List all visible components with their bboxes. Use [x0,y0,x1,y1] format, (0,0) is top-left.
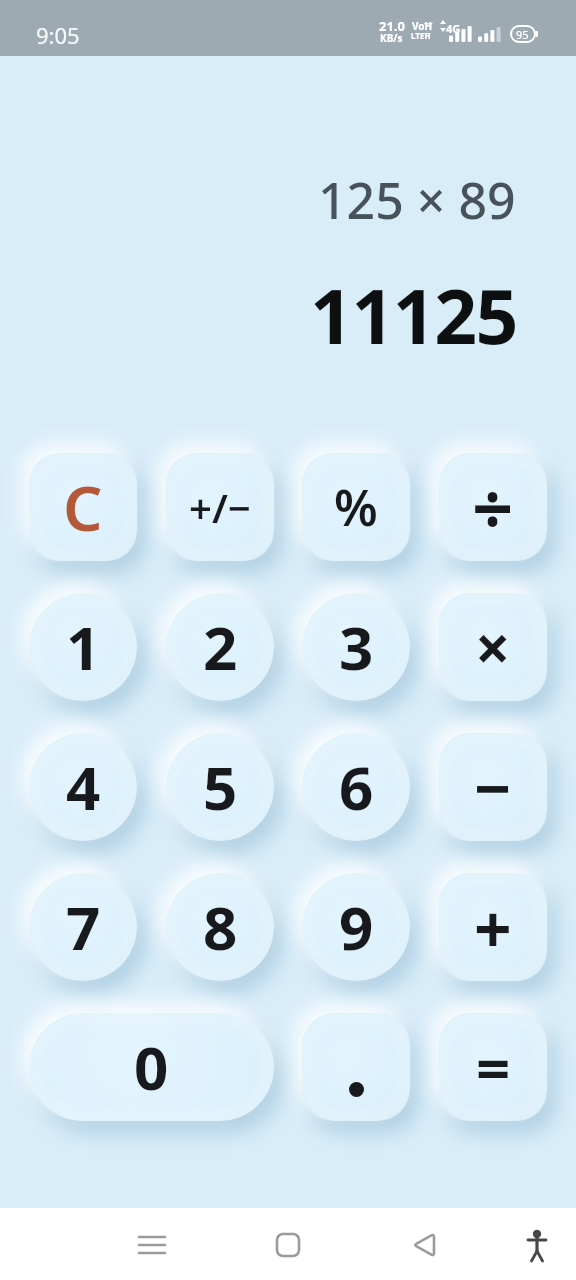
button[interactable]: 5 [166,733,274,841]
button[interactable] [128,1221,176,1269]
staticText: 1 [66,606,101,688]
staticText: 11125 [310,264,518,366]
button[interactable] [513,1221,561,1269]
staticText: 6 [339,746,374,828]
button[interactable]: 2 [166,593,274,701]
staticText: × [475,605,511,689]
staticText: = [476,1026,511,1108]
button[interactable]: = [439,1013,547,1121]
button[interactable]: 8 [166,873,274,981]
staticText: 9 [339,886,374,968]
button[interactable] [264,1221,312,1269]
button[interactable]: 1 [29,593,137,701]
staticText: 4 [66,746,101,828]
staticText: + [474,882,512,972]
staticText: ÷ [472,458,514,556]
staticText: 125 × 89 [318,166,516,234]
button[interactable]: % [302,453,410,561]
button[interactable]: − [439,733,547,841]
button[interactable]: 7 [29,873,137,981]
button[interactable]: 4 [29,733,137,841]
button[interactable] [401,1221,449,1269]
staticText: C [63,465,103,549]
staticText: 7 [66,886,101,968]
staticText: VoĦ [412,19,433,33]
staticText: 8 [203,886,238,968]
staticText: LTEĦ [411,30,431,41]
staticText: 9:05 [36,20,80,50]
staticText: % [334,473,378,541]
staticText: 2 [203,606,238,688]
button[interactable]: 0 [29,1013,274,1121]
button[interactable]: 9 [302,873,410,981]
button[interactable]: ÷ [439,453,547,561]
staticText: 3 [339,606,374,688]
button[interactable]: 3 [302,593,410,701]
button[interactable]: +/− [166,453,274,561]
button[interactable]: + [439,873,547,981]
staticText: − [474,744,512,831]
staticText: 21.0 [379,17,405,35]
staticText: 95 [516,27,529,42]
button[interactable]: C [29,453,137,561]
button[interactable]: × [439,593,547,701]
button[interactable]: 6 [302,733,410,841]
staticText: KB/s [380,31,403,45]
staticText: 4G [446,21,461,36]
staticText: 0 [134,1026,169,1108]
staticText: +/− [189,480,251,534]
button[interactable] [302,1013,410,1121]
staticText: 5 [203,746,238,828]
